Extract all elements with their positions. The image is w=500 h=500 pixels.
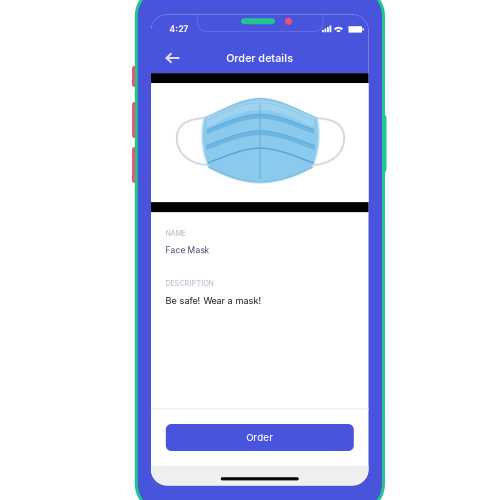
staticText: NAME — [165, 229, 185, 238]
staticText: Order details — [226, 51, 293, 64]
staticText: Face Mask — [165, 245, 209, 255]
staticText: Be safe! Wear a mask! — [165, 295, 261, 306]
button[interactable]: Order — [166, 424, 354, 451]
staticText: DESCRIPTION — [165, 279, 213, 288]
button[interactable]: Back — [151, 44, 195, 72]
staticText: Order — [246, 432, 273, 443]
staticText: 4:27 — [169, 24, 188, 34]
